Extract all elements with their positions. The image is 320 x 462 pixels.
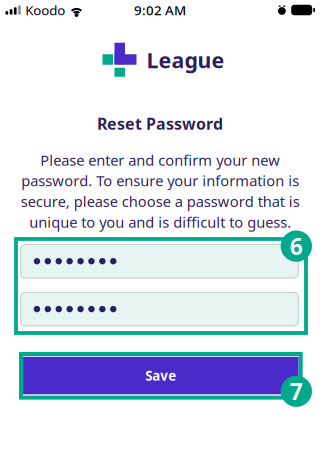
staticText: 7 (290, 376, 303, 406)
staticText: Reset Password (97, 113, 223, 134)
staticText: League (146, 46, 224, 74)
button[interactable]: Save (23, 357, 299, 394)
staticText: Save (145, 367, 176, 384)
staticText: 9:02 AM (134, 1, 186, 19)
staticText: 6 (290, 231, 303, 261)
staticText: Please enter and confirm your new passwo… (20, 150, 299, 232)
staticText: Koodo (25, 1, 65, 19)
